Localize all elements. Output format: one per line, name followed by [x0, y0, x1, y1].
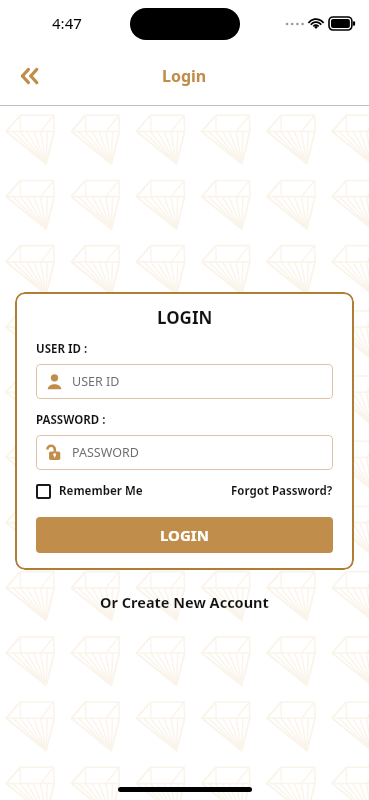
button[interactable]: Remember Me	[36, 483, 143, 499]
staticText: PASSWORD :	[36, 412, 106, 428]
staticText: LOGIN	[157, 306, 213, 329]
staticText: Remember Me	[59, 483, 143, 499]
button[interactable]: Forgot Password?	[231, 483, 333, 499]
button[interactable]: USER ID	[36, 364, 333, 399]
staticText: LOGIN	[160, 525, 209, 545]
staticText: USER ID :	[36, 341, 88, 357]
staticText: USER ID	[72, 373, 120, 390]
staticText: PASSWORD	[72, 444, 139, 461]
button[interactable]: Or Create New Account	[100, 592, 269, 612]
staticText: Login	[162, 65, 207, 87]
staticText: 4:47	[52, 13, 82, 33]
button[interactable]: PASSWORD	[36, 435, 333, 470]
button[interactable]: Back	[6, 54, 50, 98]
button[interactable]: LOGIN	[36, 517, 333, 553]
